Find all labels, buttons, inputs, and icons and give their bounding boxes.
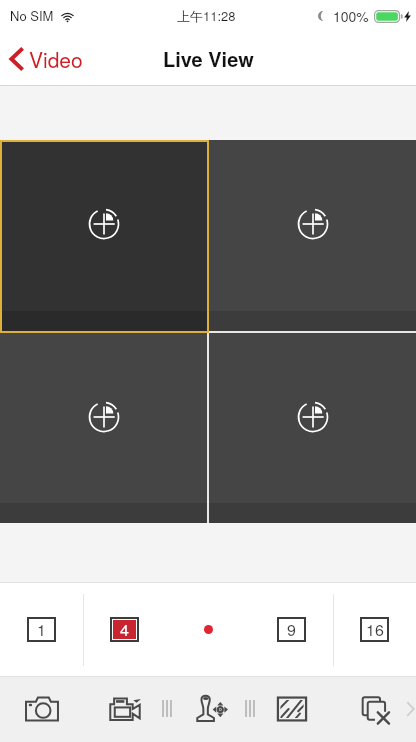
button[interactable]: Camera channel [0, 140, 207, 331]
button[interactable]: Camera channel [209, 333, 416, 523]
button[interactable]: Camera channel [0, 333, 207, 523]
button[interactable]: Camera channel [209, 140, 416, 331]
button[interactable]: Image quality [270, 685, 314, 735]
button[interactable]: 16 [360, 617, 389, 642]
staticText: 16 [366, 618, 384, 641]
button[interactable]: Video [0, 38, 95, 80]
button[interactable]: Close all [353, 685, 397, 735]
button[interactable]: 4 [110, 617, 139, 642]
staticText: 9 [287, 618, 296, 641]
button[interactable]: More layouts [204, 625, 213, 634]
staticText: 1 [37, 618, 46, 641]
button[interactable]: 1 [27, 617, 56, 642]
staticText: 上午11:28 [177, 6, 236, 25]
button[interactable]: Capture photo [20, 685, 64, 735]
staticText: Live View [163, 44, 254, 73]
staticText: No SIM [10, 6, 54, 25]
button[interactable]: Record video [103, 685, 147, 735]
button[interactable]: PTZ control [190, 685, 234, 735]
staticText: 100% [333, 6, 369, 26]
button[interactable]: 9 [277, 617, 306, 642]
staticText: 4 [120, 618, 129, 641]
staticText: Video [29, 44, 83, 74]
